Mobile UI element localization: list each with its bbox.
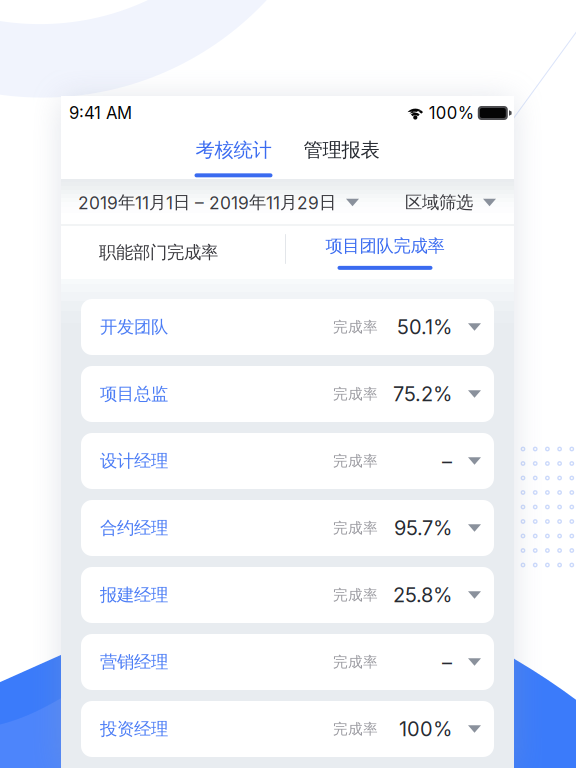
staticText: 100% (399, 717, 452, 741)
staticText: 区域筛选 (405, 192, 473, 213)
button[interactable]: 职能部门完成率 (61, 226, 256, 279)
staticText: 100% (429, 103, 474, 123)
staticText: 设计经理 (100, 450, 168, 472)
staticText: 2019年11月1日 – 2019年11月29日 (78, 192, 336, 213)
staticText: 25.8% (393, 583, 452, 607)
staticText: 营销经理 (100, 651, 168, 673)
staticText: 合约经理 (100, 517, 168, 539)
staticText: 完成率 (333, 385, 378, 403)
staticText: 完成率 (333, 653, 378, 671)
staticText: 完成率 (333, 452, 378, 470)
button[interactable]: 2019年11月1日 – 2019年11月29日 (78, 192, 359, 213)
staticText: 95.7% (394, 516, 452, 540)
button[interactable]: 投资经理 (81, 701, 494, 757)
staticText: 75.2% (393, 382, 452, 406)
button[interactable]: 项目总监 (81, 366, 494, 422)
button[interactable]: 项目团队完成率 (256, 226, 514, 279)
button[interactable]: 设计经理 (81, 433, 494, 489)
staticText: 完成率 (333, 720, 378, 738)
button[interactable]: 开发团队 (81, 299, 494, 355)
button[interactable]: 营销经理 (81, 634, 494, 690)
button[interactable]: 管理报表 (302, 130, 380, 179)
staticText: 9:41 AM (69, 103, 132, 123)
button[interactable]: 报建经理 (81, 567, 494, 623)
staticText: 管理报表 (303, 138, 379, 162)
button[interactable]: 区域筛选 (405, 192, 496, 213)
staticText: 投资经理 (100, 718, 168, 740)
staticText: 完成率 (333, 318, 378, 336)
staticText: 开发团队 (100, 316, 168, 338)
button[interactable]: 合约经理 (81, 500, 494, 556)
button[interactable]: 考核统计 (194, 130, 272, 179)
staticText: 职能部门完成率 (99, 242, 218, 263)
staticText: 报建经理 (100, 584, 168, 606)
staticText: – (442, 650, 452, 674)
staticText: 考核统计 (195, 138, 271, 162)
staticText: 完成率 (333, 519, 378, 537)
staticText: 完成率 (333, 586, 378, 604)
staticText: 50.1% (397, 315, 452, 339)
staticText: 项目总监 (100, 383, 168, 405)
staticText: – (442, 449, 452, 473)
staticText: 项目团队完成率 (325, 235, 444, 257)
